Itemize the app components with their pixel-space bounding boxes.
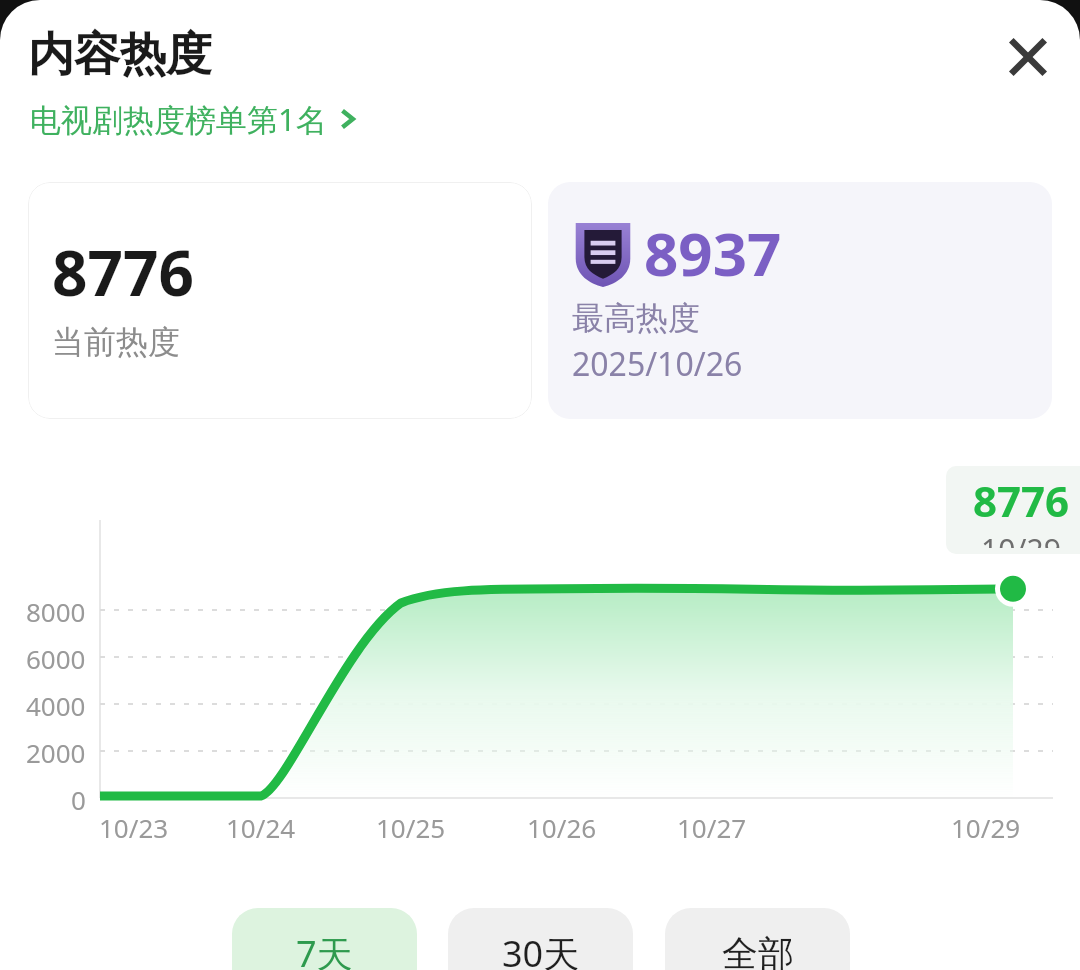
staticText: 10/29 xyxy=(951,810,1021,845)
button[interactable]: Close xyxy=(988,17,1068,97)
staticText: 2025/10/26 xyxy=(572,342,743,386)
staticText: 0 xyxy=(71,782,86,817)
button[interactable]: 30天 xyxy=(448,908,633,970)
staticText: 8776 xyxy=(973,472,1070,529)
staticText: 8776 xyxy=(52,230,194,314)
staticText: 30天 xyxy=(502,929,580,970)
button[interactable]: 全部 xyxy=(665,908,850,970)
staticText: 6000 xyxy=(26,641,86,676)
staticText: 内容热度 xyxy=(28,26,212,84)
staticText: 10/26 xyxy=(527,810,597,845)
staticText: 电视剧热度榜单第1名 xyxy=(30,98,327,140)
staticText: 8000 xyxy=(26,594,86,629)
button[interactable]: 电视剧热度榜单第1名 xyxy=(28,96,361,142)
staticText: 4000 xyxy=(26,688,86,723)
staticText: 10/23 xyxy=(99,810,169,845)
staticText: 10/25 xyxy=(376,810,446,845)
staticText: 7天 xyxy=(296,929,353,970)
staticText: 8937 xyxy=(644,212,782,294)
staticText: 全部 xyxy=(722,931,794,970)
staticText: 10/27 xyxy=(677,810,747,845)
staticText: 10/24 xyxy=(226,810,296,845)
staticText: 当前热度 xyxy=(52,322,180,362)
button[interactable]: 8937 xyxy=(548,182,1052,419)
button[interactable]: 8776 xyxy=(28,182,532,419)
staticText: 2000 xyxy=(26,735,86,770)
staticText: 最高热度 xyxy=(572,298,700,338)
staticText: 10/29 xyxy=(981,529,1061,548)
button[interactable]: 7天 xyxy=(232,908,417,970)
